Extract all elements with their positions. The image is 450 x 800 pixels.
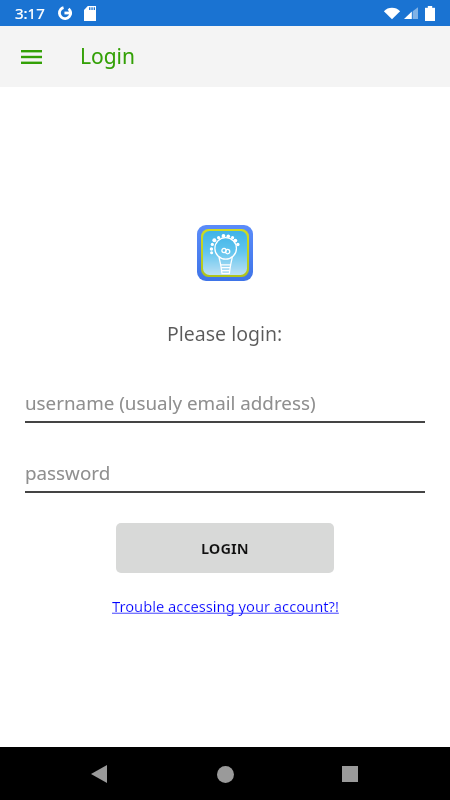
staticText: Please login: [167, 320, 283, 347]
button[interactable]: Trouble accessing your account?! [112, 596, 339, 616]
button[interactable]: Home [201, 750, 249, 798]
button[interactable]: Recents [326, 750, 374, 798]
staticText: LOGIN [201, 538, 249, 558]
staticText: Login [80, 42, 136, 71]
staticText: Trouble accessing your account?! [112, 596, 339, 616]
staticText: 3:17 [15, 3, 45, 23]
button[interactable]: Back [75, 750, 123, 798]
button[interactable]: LOGIN [116, 523, 334, 573]
staticText: username (usualy email address) [25, 390, 316, 416]
staticText: password [25, 460, 111, 486]
button[interactable]: Menu [10, 36, 52, 78]
